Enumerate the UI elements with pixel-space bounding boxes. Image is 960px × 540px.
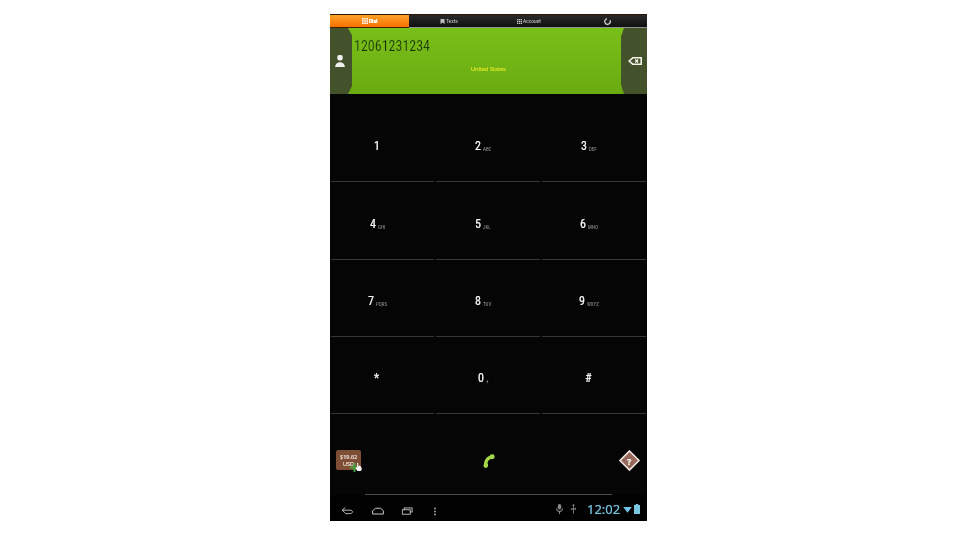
staticText: GHI <box>378 224 386 230</box>
staticText: 6 <box>580 217 586 231</box>
staticText: 3 <box>581 139 587 153</box>
staticText: # <box>585 371 592 385</box>
button[interactable]: 3 <box>541 94 647 182</box>
button[interactable]: Contacts <box>330 28 349 94</box>
staticText: Account <box>523 18 541 24</box>
staticText: ABC <box>483 146 492 152</box>
button[interactable]: Account <box>489 15 568 27</box>
staticText: + <box>486 378 489 384</box>
staticText: JKL <box>483 224 491 230</box>
button[interactable]: Balance <box>330 420 435 501</box>
staticText: 1 <box>374 139 380 153</box>
button[interactable]: Menu <box>428 504 442 518</box>
staticText: Dial <box>369 18 378 24</box>
staticText: DEF <box>589 146 597 152</box>
staticText: 2 <box>475 139 481 153</box>
staticText: 7 <box>368 294 374 308</box>
staticText: * <box>374 371 380 385</box>
staticText: PQRS <box>376 301 388 307</box>
staticText: MNO <box>588 224 598 230</box>
button[interactable]: Texts <box>409 15 489 27</box>
button[interactable]: 2 <box>435 94 541 182</box>
staticText: 8 <box>475 294 481 308</box>
button[interactable]: Help <box>541 420 647 501</box>
button[interactable]: 9 <box>541 260 647 337</box>
staticText: USD <box>343 460 355 467</box>
staticText: WXYZ <box>587 301 599 307</box>
button[interactable]: Recents <box>398 501 417 520</box>
staticText: 0 <box>478 371 484 385</box>
button[interactable]: Refresh <box>568 15 647 27</box>
button[interactable]: Call <box>435 420 541 501</box>
button[interactable]: Backspace <box>623 28 647 94</box>
button[interactable]: Back <box>338 501 357 520</box>
staticText: United States <box>471 65 506 72</box>
staticText: Texts <box>446 18 458 24</box>
button[interactable]: 6 <box>541 182 647 260</box>
button[interactable]: 0 <box>435 337 541 414</box>
staticText: 9 <box>579 294 585 308</box>
button[interactable]: * <box>330 337 435 414</box>
button[interactable]: 8 <box>435 260 541 337</box>
button[interactable]: 5 <box>435 182 541 260</box>
button[interactable]: 1 <box>330 94 435 182</box>
staticText: ? <box>627 455 632 467</box>
button[interactable]: 4 <box>330 182 435 260</box>
staticText: 4 <box>370 217 376 231</box>
button[interactable]: # <box>541 337 647 414</box>
staticText: TUV <box>483 301 492 307</box>
button[interactable]: Dial <box>330 15 409 27</box>
staticText: 12:02 <box>587 500 621 518</box>
staticText: $19.62 <box>340 453 358 460</box>
button[interactable]: Home <box>368 501 387 520</box>
staticText: 5 <box>475 217 481 231</box>
button[interactable]: 7 <box>330 260 435 337</box>
staticText: 12061231234 <box>354 38 431 54</box>
